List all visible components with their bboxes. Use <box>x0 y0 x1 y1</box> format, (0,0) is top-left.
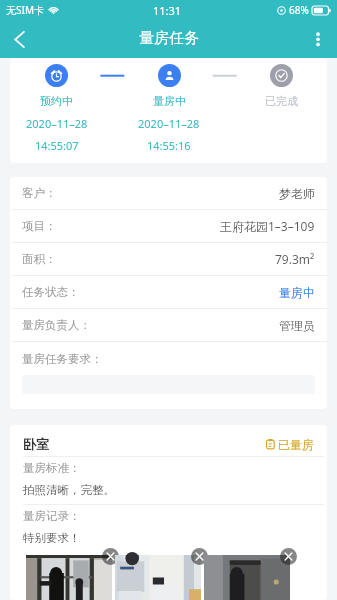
button[interactable]: 项目： <box>22 210 315 242</box>
staticText: 14:55:16 <box>147 138 191 153</box>
staticText: 量房中 <box>279 285 315 300</box>
button[interactable]: 客户： <box>22 177 315 209</box>
staticText: 预约中 <box>40 94 73 108</box>
staticText: 2020–11–28 <box>138 116 200 131</box>
button[interactable]: 任务状态： <box>22 276 315 308</box>
staticText: 量房任务要求： <box>22 352 103 366</box>
button[interactable]: 预约中 <box>0 64 113 153</box>
staticText: 面积： <box>22 252 57 266</box>
staticText: 无SIM卡 <box>6 3 44 17</box>
staticText: 量房任务 <box>139 29 199 48</box>
button[interactable]: 返回 <box>0 20 40 58</box>
button[interactable]: 面积： <box>22 243 315 275</box>
button[interactable]: 删除图片 <box>191 548 208 565</box>
staticText: 68% <box>289 3 309 17</box>
staticText: 任务状态： <box>22 285 80 299</box>
staticText: 量房负责人： <box>22 318 91 332</box>
staticText: 14:55:07 <box>35 138 79 153</box>
staticText: 2020–11–28 <box>26 116 88 131</box>
staticText: 量房中 <box>153 94 186 108</box>
button[interactable]: 量房负责人： <box>22 309 315 341</box>
button[interactable]: 量房中 <box>113 64 225 153</box>
staticText: 量房记录： <box>23 509 81 523</box>
staticText: 管理员 <box>279 318 315 333</box>
staticText: 梦老师 <box>279 186 315 201</box>
button[interactable]: 删除图片 <box>102 548 119 565</box>
staticText: 项目： <box>22 219 57 233</box>
staticText: 客户： <box>22 186 57 200</box>
staticText: 量房标准： <box>23 461 81 475</box>
staticText: 王府花园1–3–109 <box>220 218 315 234</box>
button[interactable]: 已量房 <box>266 437 314 452</box>
staticText: 已完成 <box>265 94 298 108</box>
staticText: 11:31 <box>153 3 182 18</box>
button[interactable]: 更多 <box>299 20 337 58</box>
staticText: 特别要求！ <box>23 531 81 545</box>
staticText: 卧室 <box>23 436 49 452</box>
staticText: 已量房 <box>278 437 314 452</box>
staticText: 拍照清晰，完整。 <box>23 483 115 497</box>
button[interactable]: 已完成 <box>225 64 337 108</box>
staticText: 79.3m² <box>275 251 315 267</box>
button[interactable]: 删除图片 <box>280 548 297 565</box>
